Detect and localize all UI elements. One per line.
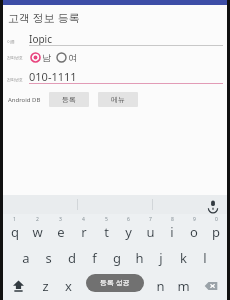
staticText: 등록 성공 (100, 278, 130, 288)
staticText: s (45, 249, 52, 267)
staticText: 5 (105, 216, 108, 223)
staticText: 이름 (7, 39, 29, 44)
button[interactable]: n (149, 271, 172, 300)
button[interactable]: j (150, 244, 172, 271)
button[interactable]: 남 (29, 52, 52, 63)
button[interactable]: a (14, 244, 37, 271)
staticText: 고객 정보 등록 (8, 10, 80, 25)
staticText: r (81, 223, 87, 241)
staticText: 7 (149, 216, 152, 223)
button[interactable]: x (57, 271, 80, 300)
staticText: 메뉴 (111, 95, 125, 104)
button[interactable] (153, 195, 227, 214)
staticText: b (134, 277, 142, 295)
staticText: 6 (127, 216, 130, 223)
staticText: p (212, 223, 220, 241)
staticText: a (22, 249, 30, 267)
staticText: c (88, 277, 95, 295)
staticText: 1 (13, 216, 16, 223)
button[interactable]: d (60, 244, 83, 271)
button[interactable]: 3 (49, 214, 72, 244)
staticText: q (11, 223, 19, 241)
staticText: 여 (68, 52, 77, 63)
button[interactable]: g (106, 244, 128, 271)
button[interactable]: 8 (161, 214, 183, 244)
button[interactable]: v (103, 271, 126, 300)
staticText: f (92, 249, 97, 267)
staticText: 0 (215, 216, 218, 223)
staticText: 등록 (62, 95, 76, 104)
staticText: 4 (82, 216, 85, 223)
staticText: 8 (171, 216, 174, 223)
button[interactable]: l (194, 244, 216, 271)
staticText: y (125, 223, 132, 241)
staticText: n (156, 277, 165, 295)
button[interactable]: 0 (205, 214, 227, 244)
button[interactable]: c (80, 271, 103, 300)
button[interactable]: m (172, 271, 195, 300)
button[interactable]: Shift (3, 271, 34, 300)
staticText: i (170, 223, 174, 241)
staticText: 남 (42, 52, 51, 63)
staticText: m (177, 277, 190, 295)
button[interactable]: 1 (3, 214, 26, 244)
button[interactable]: 5 (95, 214, 117, 244)
staticText: k (180, 249, 187, 267)
staticText: v (111, 277, 118, 295)
staticText: w (32, 223, 43, 241)
button[interactable]: 여 (55, 52, 78, 63)
button[interactable]: 메뉴 (98, 92, 138, 107)
staticText: e (57, 223, 65, 241)
button[interactable]: 6 (117, 214, 139, 244)
staticText: 전화번호 (7, 55, 29, 60)
staticText: g (113, 249, 121, 267)
staticText: Iopic (29, 32, 52, 45)
button[interactable]: 4 (72, 214, 95, 244)
button[interactable]: 등록 (49, 92, 89, 107)
button[interactable]: k (172, 244, 194, 271)
button[interactable]: h (128, 244, 150, 271)
button[interactable]: z (34, 271, 57, 300)
button[interactable]: Backspace (195, 271, 227, 300)
staticText: u (146, 223, 155, 241)
staticText: Android DB (8, 96, 41, 104)
staticText: o (190, 223, 198, 241)
button[interactable]: Voice input (206, 198, 220, 212)
staticText: 3 (59, 216, 62, 223)
button[interactable]: 7 (139, 214, 161, 244)
staticText: l (203, 249, 207, 267)
staticText: 전화번호 (7, 77, 29, 82)
staticText: z (42, 277, 49, 295)
staticText: h (135, 249, 144, 267)
button[interactable]: b (126, 271, 149, 300)
staticText: 2 (36, 216, 39, 223)
button[interactable]: f (83, 244, 106, 271)
staticText: 010-1111 (29, 69, 77, 83)
staticText: t (104, 223, 109, 241)
staticText: 9 (193, 216, 196, 223)
button[interactable]: s (37, 244, 60, 271)
button[interactable]: 2 (26, 214, 49, 244)
staticText: j (159, 249, 163, 267)
staticText: d (68, 249, 76, 267)
staticText: x (65, 277, 72, 295)
button[interactable]: 9 (183, 214, 205, 244)
